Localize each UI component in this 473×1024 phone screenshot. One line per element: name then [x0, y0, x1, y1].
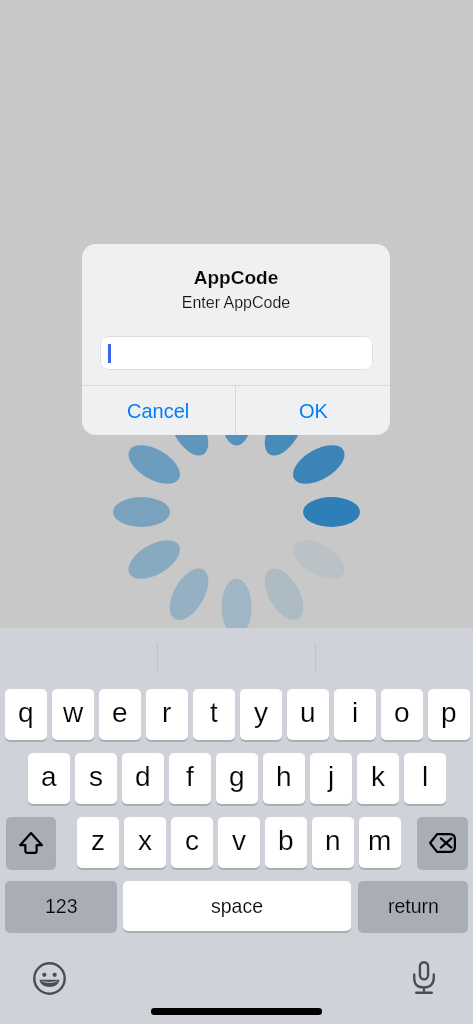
staticText: return [388, 895, 439, 917]
staticText: k [371, 761, 385, 792]
button[interactable]: g [216, 753, 258, 806]
button[interactable]: l [404, 753, 446, 806]
button[interactable]: t [193, 689, 235, 742]
staticText: b [278, 825, 294, 856]
staticText: n [325, 825, 341, 856]
staticText: d [135, 761, 151, 792]
button[interactable]: y [240, 689, 282, 742]
button[interactable]: space [123, 881, 351, 931]
button[interactable]: z [77, 817, 119, 868]
button[interactable]: k [357, 753, 399, 806]
button[interactable]: r [146, 689, 188, 742]
staticText: x [138, 825, 152, 856]
button[interactable]: o [381, 689, 423, 742]
staticText: 123 [45, 895, 78, 917]
button[interactable]: d [122, 753, 164, 806]
staticText: t [210, 697, 218, 728]
button[interactable]: v [218, 817, 260, 868]
button[interactable]: OK [236, 386, 390, 435]
button[interactable]: q [5, 689, 47, 742]
staticText: g [229, 761, 245, 792]
button[interactable]: 123 [5, 881, 117, 931]
button[interactable]: c [171, 817, 213, 868]
staticText: q [18, 697, 34, 728]
staticText: m [368, 825, 392, 856]
staticText: z [91, 825, 105, 856]
button[interactable]: u [287, 689, 329, 742]
staticText: l [422, 761, 429, 792]
staticText: h [276, 761, 292, 792]
button[interactable]: s [75, 753, 117, 806]
button[interactable]: f [169, 753, 211, 806]
staticText: f [186, 761, 194, 792]
button[interactable]: return [358, 881, 468, 931]
staticText: space [211, 895, 264, 917]
button[interactable]: n [312, 817, 354, 868]
button[interactable]: b [265, 817, 307, 868]
button[interactable]: p [428, 689, 470, 742]
staticText: c [185, 825, 199, 856]
staticText: Cancel [127, 400, 190, 422]
button[interactable] [100, 336, 373, 370]
staticText: AppCode [82, 267, 390, 288]
button[interactable]: a [28, 753, 70, 806]
button[interactable]: m [359, 817, 401, 868]
staticText: u [300, 697, 316, 728]
button[interactable]: w [52, 689, 94, 742]
staticText: OK [299, 400, 328, 422]
staticText: Enter AppCode [82, 294, 390, 312]
staticText: e [112, 697, 128, 728]
button[interactable]: j [310, 753, 352, 806]
button[interactable]: Emoji keyboard [33, 962, 66, 995]
staticText: s [89, 761, 103, 792]
staticText: r [162, 697, 172, 728]
button[interactable]: x [124, 817, 166, 868]
staticText: j [328, 761, 335, 792]
button[interactable]: i [334, 689, 376, 742]
button[interactable]: h [263, 753, 305, 806]
staticText: w [63, 697, 84, 728]
button[interactable]: Cancel [82, 386, 235, 435]
staticText: v [232, 825, 246, 856]
button[interactable]: Backspace [417, 817, 468, 868]
staticText: a [41, 761, 57, 792]
staticText: o [394, 697, 410, 728]
button[interactable]: e [99, 689, 141, 742]
staticText: i [352, 697, 359, 728]
button[interactable]: Shift [6, 817, 56, 868]
staticText: p [441, 697, 457, 728]
staticText: y [254, 697, 268, 728]
button[interactable]: Dictation [413, 961, 435, 994]
